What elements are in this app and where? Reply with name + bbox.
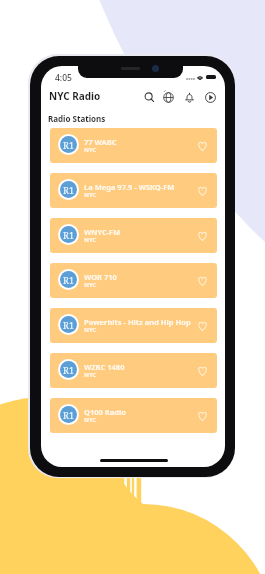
button[interactable]: Favourite — [193, 317, 211, 335]
button[interactable]: R1 — [50, 173, 217, 208]
button[interactable]: R1 — [50, 398, 217, 433]
button[interactable]: R1 — [50, 128, 217, 163]
staticText: R1 — [63, 364, 74, 376]
staticText: R1 — [63, 409, 74, 421]
button[interactable]: Search — [142, 90, 156, 104]
button[interactable]: R1 — [50, 353, 217, 388]
staticText: NYC — [84, 191, 97, 199]
staticText: R1 — [63, 274, 74, 286]
button[interactable]: Notifications — [182, 90, 196, 104]
button[interactable]: Language — [161, 90, 175, 104]
button[interactable]: R1 — [50, 263, 217, 298]
staticText: WOR 710 — [84, 272, 117, 282]
staticText: WZRC 1480 — [84, 362, 125, 372]
staticText: NYC — [84, 326, 97, 334]
staticText: Powerhits - Hitz and Hip Hop — [84, 317, 191, 327]
button[interactable]: R1 — [50, 218, 217, 253]
staticText: Q100 Radio — [84, 407, 126, 417]
button[interactable]: Favourite — [193, 407, 211, 425]
staticText: WNYC-FM — [84, 227, 121, 237]
staticText: 77 WABC — [84, 137, 117, 147]
staticText: NYC — [84, 236, 97, 244]
staticText: NYC — [84, 371, 97, 379]
staticText: NYC — [84, 416, 97, 424]
staticText: R1 — [63, 319, 74, 331]
staticText: R1 — [63, 139, 74, 151]
staticText: NYC — [84, 281, 97, 289]
staticText: NYC Radio — [49, 89, 101, 103]
button[interactable]: R1 — [50, 308, 217, 343]
staticText: R1 — [63, 184, 74, 196]
staticText: R1 — [63, 229, 74, 241]
button[interactable]: Favourite — [193, 227, 211, 245]
staticText: 4:05 — [55, 72, 72, 84]
button[interactable]: Favourite — [193, 137, 211, 155]
staticText: Radio Stations — [48, 113, 106, 124]
staticText: La Mega 97.9 - WSKQ-FM — [84, 182, 175, 192]
button[interactable]: Favourite — [193, 272, 211, 290]
button[interactable]: Favourite — [193, 362, 211, 380]
staticText: NYC — [84, 146, 97, 154]
button[interactable]: Play — [203, 90, 217, 104]
button[interactable]: Favourite — [193, 182, 211, 200]
